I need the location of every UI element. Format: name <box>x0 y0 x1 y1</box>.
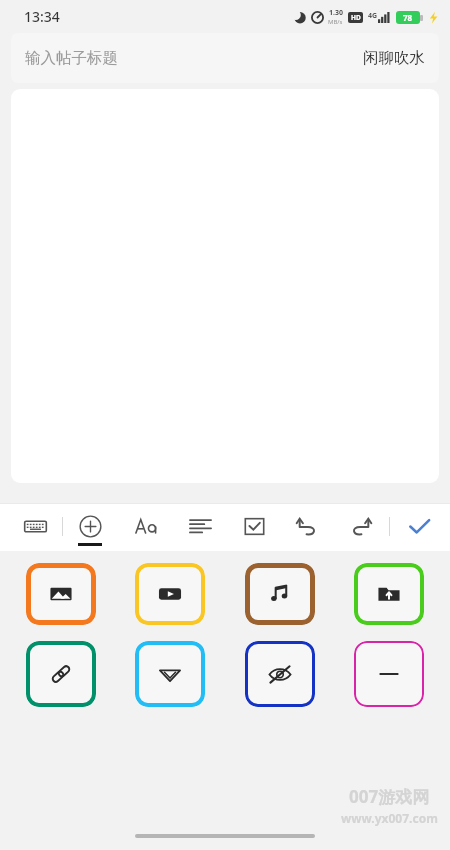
button[interactable]: Undo <box>288 507 326 545</box>
button[interactable]: Hide content <box>245 641 315 707</box>
button[interactable]: Redo <box>341 507 379 545</box>
button[interactable]: Image <box>26 563 96 625</box>
staticText: 输入帖子标题 <box>25 48 118 68</box>
button[interactable]: Checklist <box>235 507 273 545</box>
button[interactable]: Keyboard <box>16 507 54 545</box>
staticText: 78 <box>403 12 413 23</box>
staticText: www.yx007.com <box>341 810 438 826</box>
staticText: 007游戏网 <box>349 785 430 808</box>
staticText: 1.30 <box>329 8 343 18</box>
button[interactable]: Premium <box>135 641 205 707</box>
button[interactable]: Upload file <box>354 563 424 625</box>
staticText: MB/s <box>328 18 343 26</box>
staticText: 闲聊吹水 <box>363 48 425 68</box>
staticText: HD <box>351 13 361 22</box>
button[interactable]: 输入帖子标题 <box>11 33 439 83</box>
button[interactable]: Text format <box>127 507 165 545</box>
button[interactable]: Divider <box>354 641 424 707</box>
button[interactable]: Music <box>245 563 315 625</box>
button[interactable]: 闲聊吹水 <box>349 40 439 76</box>
button[interactable]: Link <box>26 641 96 707</box>
button[interactable]: Confirm <box>400 507 438 545</box>
button[interactable]: Insert <box>71 507 109 545</box>
button[interactable]: Align <box>181 507 219 545</box>
staticText: 4G <box>368 11 378 21</box>
button[interactable]: Video <box>135 563 205 625</box>
staticText: 13:34 <box>24 7 60 26</box>
